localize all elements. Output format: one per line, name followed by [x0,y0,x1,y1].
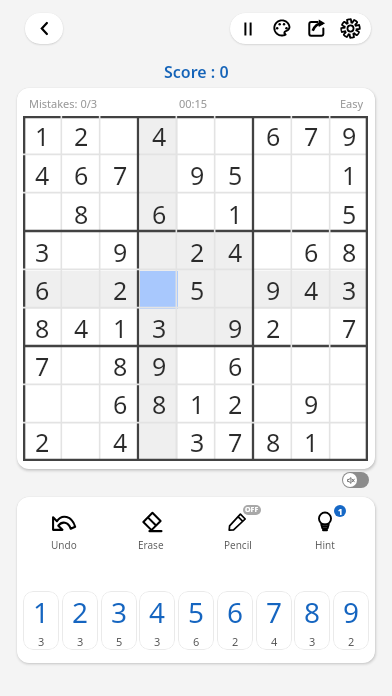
button[interactable]: Share [299,13,333,44]
button[interactable] [178,347,216,385]
button[interactable] [101,116,140,155]
button[interactable]: Pause [231,13,265,44]
button[interactable] [254,385,292,423]
button[interactable]: 3 [330,271,368,309]
button[interactable] [292,347,330,385]
button[interactable]: Sound [342,472,369,488]
button[interactable]: 4 [216,233,254,271]
button[interactable] [23,194,62,233]
button[interactable]: 3 [178,423,216,461]
button[interactable]: OFF [208,508,268,552]
button[interactable]: 9 [178,155,216,194]
button[interactable]: 4 [139,591,175,650]
button[interactable]: 7 [256,591,292,650]
button[interactable]: 4 [140,116,178,155]
button[interactable]: 3 [140,309,178,347]
button[interactable] [62,233,101,271]
button[interactable] [330,423,368,461]
button[interactable]: 2 [62,116,101,155]
button[interactable] [292,155,330,194]
button[interactable] [62,423,101,461]
button[interactable]: 7 [292,116,330,155]
button[interactable]: 7 [216,423,254,461]
button[interactable]: 8 [101,347,140,385]
button[interactable]: 2 [101,271,140,309]
button[interactable]: 6 [254,116,292,155]
button[interactable]: 5 [216,155,254,194]
button[interactable]: Theme [265,13,299,44]
button[interactable]: 6 [101,385,140,423]
button[interactable] [330,347,368,385]
button[interactable]: 1 [295,508,355,552]
button[interactable]: 8 [254,423,292,461]
button[interactable] [292,194,330,233]
button[interactable]: 1 [101,309,140,347]
button[interactable] [216,116,254,155]
button[interactable]: 8 [140,385,178,423]
button[interactable] [254,347,292,385]
button[interactable]: 2 [254,309,292,347]
button[interactable]: 6 [23,271,62,309]
button[interactable] [62,385,101,423]
button[interactable]: 9 [333,591,369,650]
button[interactable] [178,309,216,347]
button[interactable]: 1 [178,385,216,423]
button[interactable]: 9 [101,233,140,271]
button[interactable]: 6 [216,347,254,385]
button[interactable] [140,423,178,461]
button[interactable]: 1 [23,591,59,650]
button[interactable] [254,194,292,233]
button[interactable]: 6 [217,591,253,650]
button[interactable]: 2 [178,233,216,271]
button[interactable]: 2 [23,423,62,461]
button[interactable]: 7 [330,309,368,347]
button[interactable]: 4 [101,423,140,461]
button[interactable]: 5 [178,591,214,650]
button[interactable] [140,271,178,309]
button[interactable]: 5 [178,271,216,309]
button[interactable]: 3 [101,591,137,650]
button[interactable]: Settings [333,13,367,44]
button[interactable]: 6 [62,155,101,194]
button[interactable]: 1 [330,155,368,194]
button[interactable]: 1 [216,194,254,233]
button[interactable]: 9 [140,347,178,385]
button[interactable] [178,116,216,155]
button[interactable]: 8 [23,309,62,347]
button[interactable]: 3 [23,233,62,271]
button[interactable] [178,194,216,233]
button[interactable]: 9 [330,116,368,155]
button[interactable]: 4 [292,271,330,309]
button[interactable]: 5 [330,194,368,233]
button[interactable]: 9 [292,385,330,423]
button[interactable]: 9 [216,309,254,347]
button[interactable]: 7 [101,155,140,194]
button[interactable] [62,347,101,385]
button[interactable]: 8 [62,194,101,233]
button[interactable]: 6 [140,194,178,233]
button[interactable]: 2 [216,385,254,423]
button[interactable] [254,155,292,194]
button[interactable]: 2 [62,591,98,650]
button[interactable]: 6 [292,233,330,271]
button[interactable] [330,385,368,423]
button[interactable]: 1 [23,116,62,155]
button[interactable]: Erase [121,508,181,552]
button[interactable] [216,271,254,309]
button[interactable] [292,309,330,347]
button[interactable] [23,385,62,423]
button[interactable]: 4 [23,155,62,194]
button[interactable]: Back [25,13,63,44]
button[interactable]: 1 [292,423,330,461]
button[interactable]: 7 [23,347,62,385]
button[interactable]: 9 [254,271,292,309]
button[interactable] [101,194,140,233]
button[interactable] [254,233,292,271]
button[interactable]: Undo [34,508,94,552]
button[interactable]: 4 [62,309,101,347]
button[interactable]: 8 [330,233,368,271]
button[interactable]: 8 [294,591,330,650]
